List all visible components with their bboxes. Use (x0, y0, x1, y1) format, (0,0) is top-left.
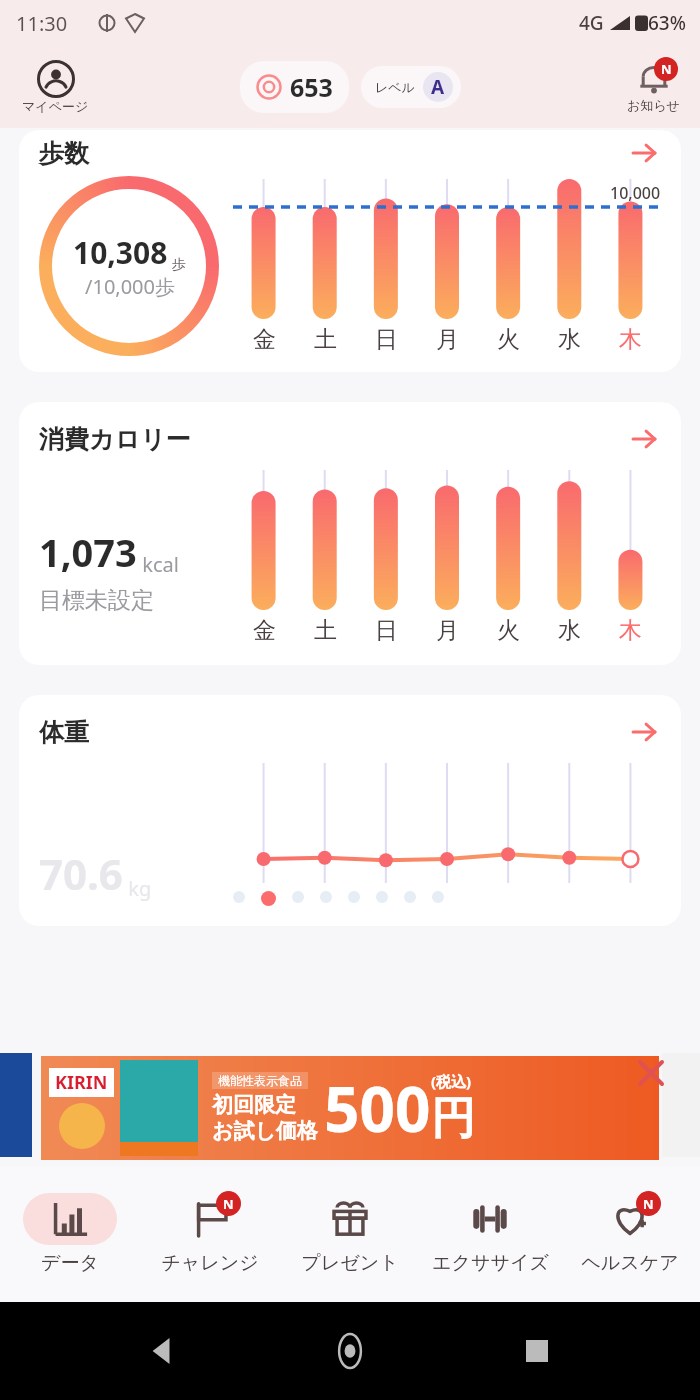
staticText: N (661, 60, 672, 78)
staticText: 月 (436, 325, 459, 354)
staticText: データ (41, 1251, 99, 1275)
staticText: 火 (497, 325, 520, 354)
button[interactable]: エクササイズ (420, 1166, 560, 1302)
staticText: ヘルスケア (581, 1251, 679, 1275)
staticText: お知らせ (627, 97, 680, 113)
staticText: チャレンジ (161, 1251, 259, 1275)
staticText: 水 (558, 325, 581, 354)
button[interactable]: マイページ (22, 60, 89, 114)
staticText: N (643, 1195, 654, 1213)
button[interactable]: プレゼント (280, 1166, 420, 1302)
staticText: 木 (619, 325, 642, 354)
staticText: お試し価格 (212, 1118, 318, 1144)
button[interactable]: 653 (240, 61, 349, 113)
staticText: 70.6 (39, 845, 123, 902)
staticText: レベル (375, 79, 415, 95)
staticText: 火 (497, 616, 520, 645)
button[interactable]: 消費カロリー (19, 402, 681, 665)
staticText: 63% (648, 10, 686, 36)
button[interactable]: ホーム (326, 1327, 374, 1375)
staticText: /10,000歩 (85, 273, 175, 300)
staticText: KIRIN (55, 1070, 108, 1095)
staticText: A (431, 74, 445, 100)
staticText: 10,000 (610, 182, 661, 204)
staticText: 歩数 (39, 138, 89, 169)
button[interactable]: 体重 (19, 695, 681, 926)
staticText: 消費カロリー (39, 424, 191, 455)
button[interactable]: 広告 (662, 1053, 700, 1157)
button[interactable]: お知らせ (627, 61, 680, 113)
staticText: 目標未設定 (39, 586, 154, 615)
staticText: 初回限定 (212, 1092, 296, 1118)
staticText: 金 (253, 325, 276, 354)
staticText: 体重 (39, 717, 89, 748)
staticText: プレゼント (301, 1251, 399, 1275)
button[interactable]: データ (0, 1166, 140, 1302)
staticText: N (223, 1195, 234, 1213)
staticText: 日 (375, 616, 398, 645)
button[interactable]: 最近のアプリ (513, 1327, 561, 1375)
button[interactable]: N (560, 1166, 700, 1302)
staticText: 4G (579, 10, 604, 36)
button[interactable]: 詳細 (627, 715, 661, 749)
staticText: 土 (314, 616, 337, 645)
staticText: 歩 (168, 254, 186, 273)
button[interactable]: N (140, 1166, 280, 1302)
staticText: 水 (558, 616, 581, 645)
staticText: 木 (619, 616, 642, 645)
staticText: 653 (290, 70, 333, 104)
staticText: (税込) (431, 1071, 472, 1091)
staticText: 円 (431, 1091, 475, 1146)
staticText: エクササイズ (432, 1251, 549, 1275)
staticText: 日 (375, 325, 398, 354)
staticText: 10,308 (73, 232, 168, 273)
button[interactable]: 詳細 (627, 422, 661, 456)
staticText: kcal (137, 551, 179, 578)
button[interactable]: 歩数 (19, 130, 681, 372)
staticText: 月 (436, 616, 459, 645)
staticText: 11:30 (16, 10, 68, 37)
staticText: マイページ (22, 98, 89, 114)
staticText: 1,073 (39, 526, 137, 578)
button[interactable]: 詳細 (627, 136, 661, 170)
staticText: kg (123, 875, 152, 902)
button[interactable]: 戻る (139, 1327, 187, 1375)
button[interactable]: 閉じる (636, 1058, 666, 1088)
button[interactable]: 広告 (41, 1056, 659, 1160)
staticText: 土 (314, 325, 337, 354)
staticText: 500 (324, 1066, 431, 1150)
button[interactable]: レベル (361, 66, 461, 108)
staticText: 金 (253, 616, 276, 645)
staticText: 機能性表示食品 (218, 1073, 302, 1088)
